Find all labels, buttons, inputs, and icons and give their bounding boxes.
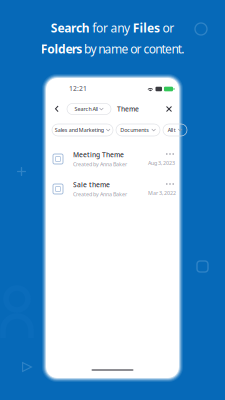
staticText: Sale theme (73, 180, 110, 189)
staticText: Created by Anna Baker (73, 161, 127, 168)
button[interactable]: Back (51, 102, 63, 116)
staticText: Meeting Theme (73, 150, 124, 159)
staticText: Aug 3, 2023 (148, 159, 175, 167)
button[interactable]: Sales and Marketing (52, 124, 113, 136)
staticText: Search for any Files or (51, 20, 174, 36)
staticText: Search All (74, 105, 97, 113)
button[interactable]: Sale theme (46, 174, 179, 204)
button[interactable]: Search All (67, 103, 111, 114)
staticText: All t (168, 126, 176, 134)
staticText: Created by Anna Baker (73, 191, 127, 198)
staticText: Theme (117, 105, 139, 113)
button[interactable]: All t (163, 124, 187, 136)
staticText: Mar 3, 2022 (148, 189, 176, 197)
button[interactable]: Documents (116, 124, 160, 136)
staticText: Sales and Marketing (55, 126, 104, 134)
staticText: 12:21 (69, 84, 87, 93)
staticText: Documents (120, 126, 149, 134)
button[interactable]: Clear search (163, 103, 175, 115)
button[interactable]: Meeting Theme (46, 144, 179, 174)
staticText: Folders by name or content. (41, 41, 184, 57)
